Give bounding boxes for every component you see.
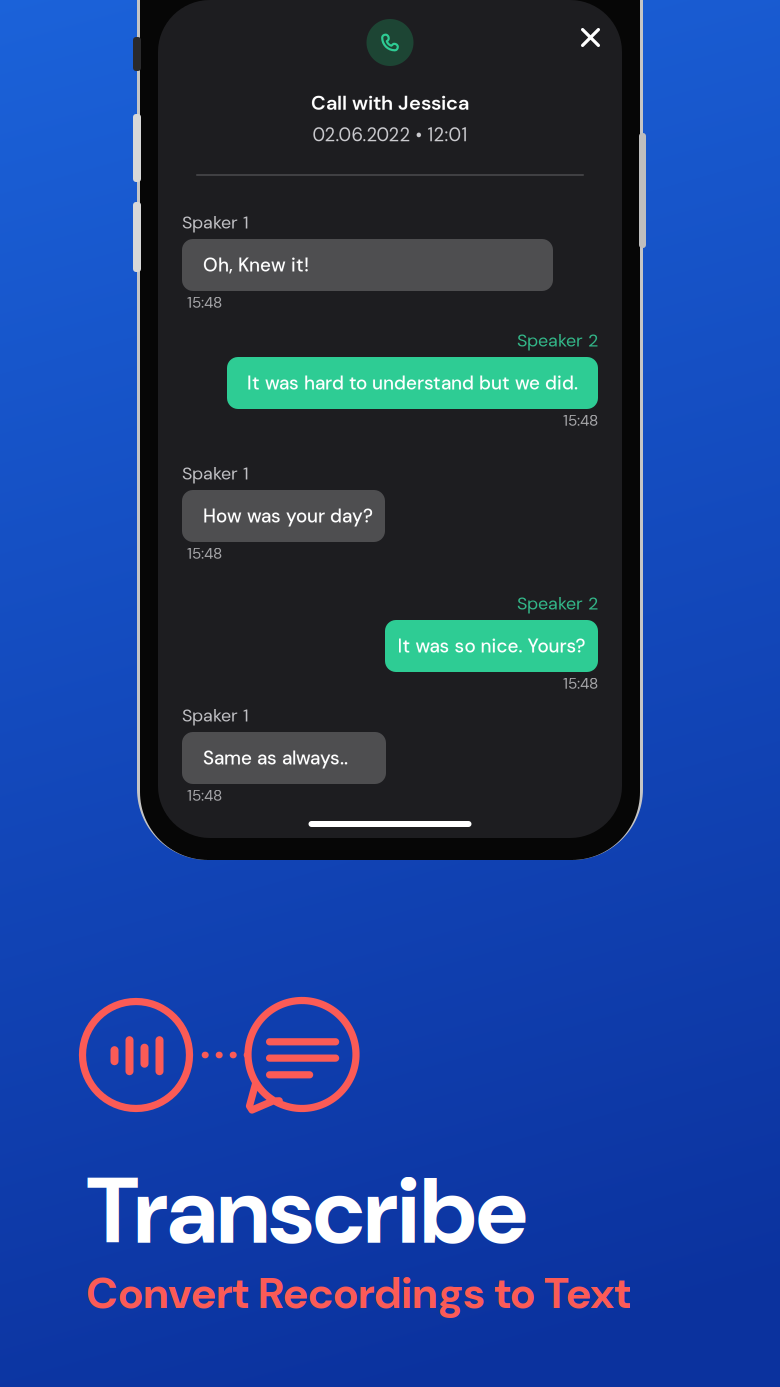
staticText: 15:48 xyxy=(187,292,222,312)
staticText: Speaker 2 xyxy=(517,592,598,615)
staticText: 02.06.2022 • 12:01 xyxy=(312,123,467,147)
staticText: Speaker 2 xyxy=(517,329,598,352)
staticText: Spaker 1 xyxy=(182,211,249,234)
staticText: Call with Jessica xyxy=(311,90,469,116)
staticText: 15:48 xyxy=(187,785,222,805)
staticText: 15:48 xyxy=(563,410,598,430)
staticText: 15:48 xyxy=(187,543,222,563)
staticText: Spaker 1 xyxy=(182,462,249,485)
button[interactable]: Close xyxy=(572,19,609,56)
staticText: 15:48 xyxy=(563,673,598,693)
staticText: Spaker 1 xyxy=(182,704,249,727)
staticText: Convert Recordings to Text xyxy=(86,1265,631,1321)
staticText: It was so nice. Yours? xyxy=(397,634,585,658)
staticText: Transcribe xyxy=(87,1151,527,1271)
staticText: How was your day? xyxy=(203,504,373,528)
staticText: Oh, Knew it! xyxy=(203,253,309,277)
staticText: Same as always.. xyxy=(203,746,348,770)
staticText: It was hard to understand but we did. xyxy=(247,371,578,395)
